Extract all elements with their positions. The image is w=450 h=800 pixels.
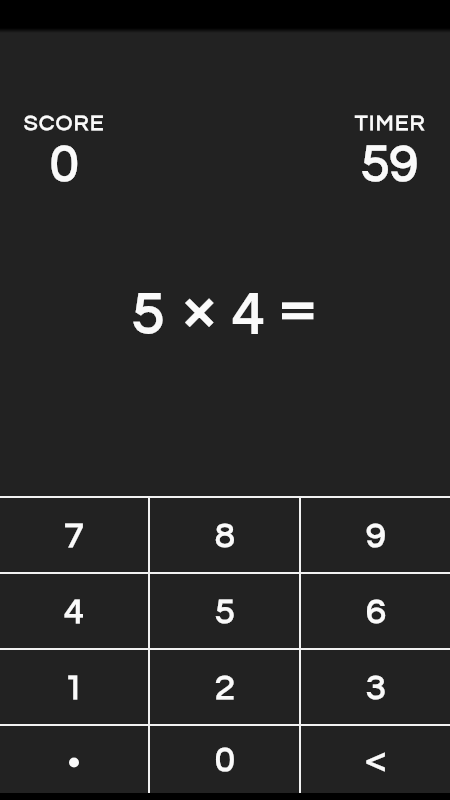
button[interactable]: 2: [150, 650, 299, 724]
button[interactable]: 9: [301, 498, 450, 572]
button[interactable]: 8: [150, 498, 299, 572]
staticText: 4: [64, 593, 84, 630]
staticText: 0: [215, 741, 235, 778]
button[interactable]: 7: [0, 498, 148, 572]
staticText: 5: [215, 593, 235, 630]
staticText: 4: [232, 285, 265, 346]
staticText: ×: [182, 277, 217, 342]
staticText: 6: [366, 593, 386, 630]
button[interactable]: 6: [301, 574, 450, 648]
staticText: SCORE: [24, 112, 105, 135]
staticText: 5: [132, 285, 165, 346]
staticText: 7: [64, 517, 84, 554]
staticText: 0: [50, 138, 79, 192]
staticText: TIMER: [355, 112, 426, 135]
button[interactable]: 1: [0, 650, 148, 724]
staticText: 9: [366, 517, 386, 554]
button[interactable]: 5: [150, 574, 299, 648]
staticText: 8: [215, 517, 235, 554]
button[interactable]: 3: [301, 650, 450, 724]
staticText: <: [366, 741, 386, 778]
staticText: 1: [64, 669, 84, 706]
button[interactable]: 0: [150, 726, 299, 793]
button[interactable]: 4: [0, 574, 148, 648]
staticText: 3: [366, 669, 386, 706]
button[interactable]: <: [301, 726, 450, 793]
staticText: 2: [215, 669, 235, 706]
staticText: 59: [361, 138, 419, 192]
button[interactable]: [0, 726, 148, 793]
